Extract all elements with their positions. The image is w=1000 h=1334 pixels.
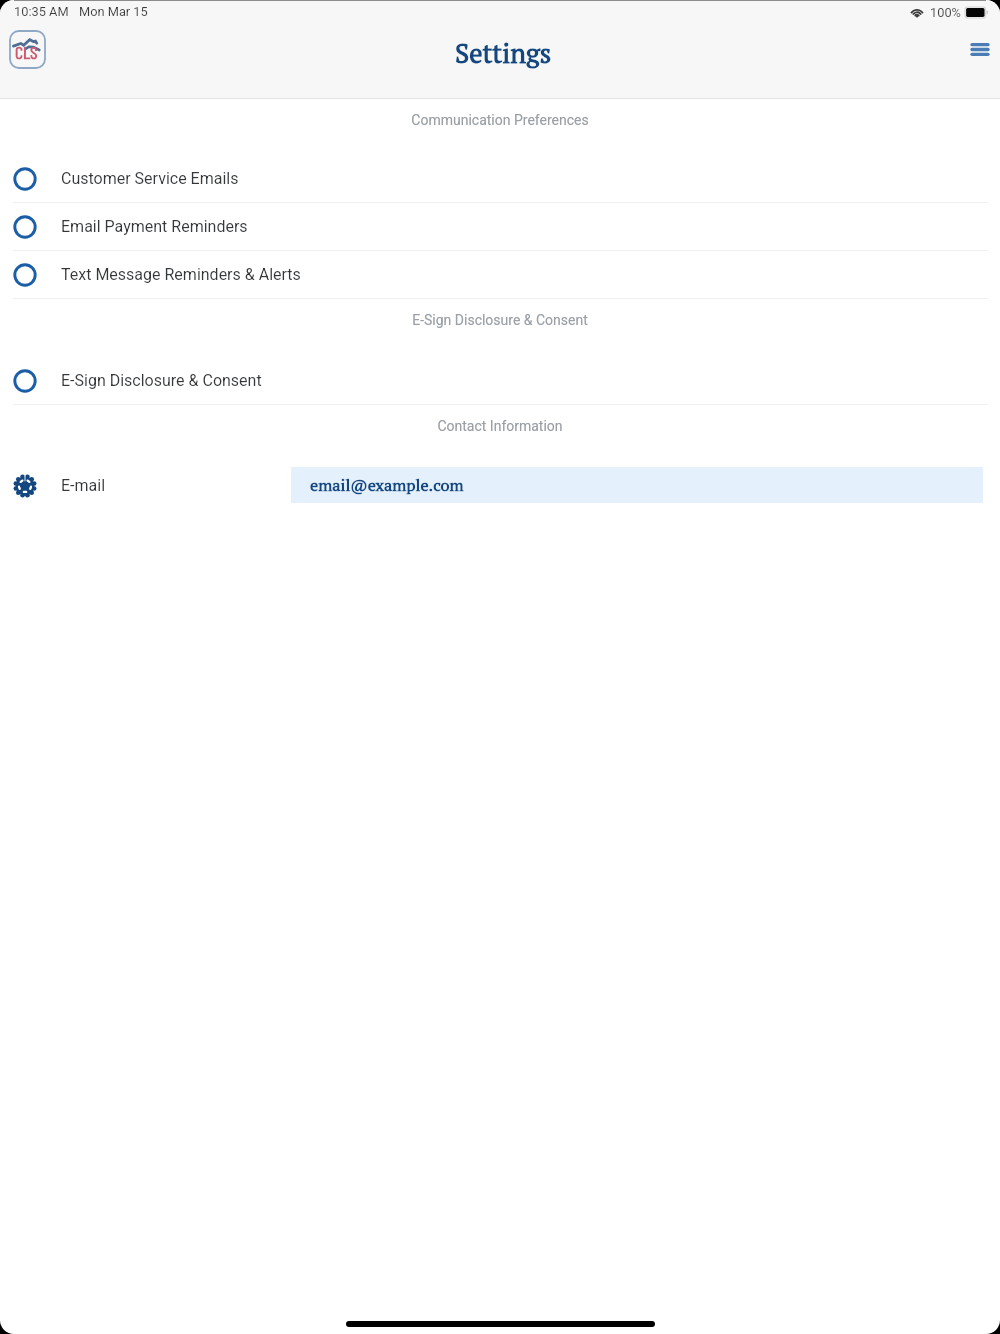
button[interactable]: Customer Service Emails [0,155,1000,202]
staticText: Communication Preferences [411,112,589,128]
staticText: CLS [15,41,38,63]
button[interactable]: E-Sign Disclosure & Consent [0,357,1000,404]
staticText: Text Message Reminders & Alerts [61,265,301,284]
staticText: Email Payment Reminders [61,217,248,236]
button[interactable]: email@example.com [291,467,983,503]
staticText: Settings [455,35,552,70]
staticText: Customer Service Emails [61,169,239,188]
staticText: 100% [930,5,961,20]
staticText: Mon Mar 15 [79,4,148,19]
staticText: email@example.com [310,474,464,496]
button[interactable]: Email Payment Reminders [0,203,1000,250]
button[interactable]: Text Message Reminders & Alerts [0,251,1000,298]
button[interactable]: CLS home [9,30,46,69]
staticText: 10:35 AM [14,4,69,19]
staticText: E-Sign Disclosure & Consent [412,312,588,328]
staticText: E-mail [61,476,106,495]
staticText: E-Sign Disclosure & Consent [61,371,262,390]
button[interactable]: Menu [961,30,999,68]
staticText: Contact Information [437,418,563,434]
